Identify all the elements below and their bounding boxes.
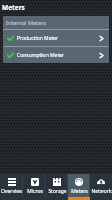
- staticText: Storage: [48, 188, 67, 195]
- button[interactable]: Micros: [23, 174, 46, 200]
- button[interactable]: Production Meter: [3, 30, 109, 46]
- button[interactable]: Network: [90, 174, 112, 200]
- staticText: Micros: [27, 188, 43, 195]
- button[interactable]: Consumption Meter: [3, 47, 109, 63]
- staticText: Internal Meters: [6, 19, 47, 26]
- button[interactable]: Meters: [68, 174, 90, 200]
- button[interactable]: Storage: [46, 174, 68, 200]
- staticText: Meters: [71, 188, 88, 195]
- staticText: Consumption Meter: [17, 52, 65, 59]
- button[interactable]: Overview: [0, 174, 23, 200]
- staticText: Overview: [1, 188, 23, 195]
- staticText: Meters: [2, 3, 25, 12]
- staticText: Network: [91, 188, 112, 195]
- staticText: Production Meter: [17, 35, 59, 42]
